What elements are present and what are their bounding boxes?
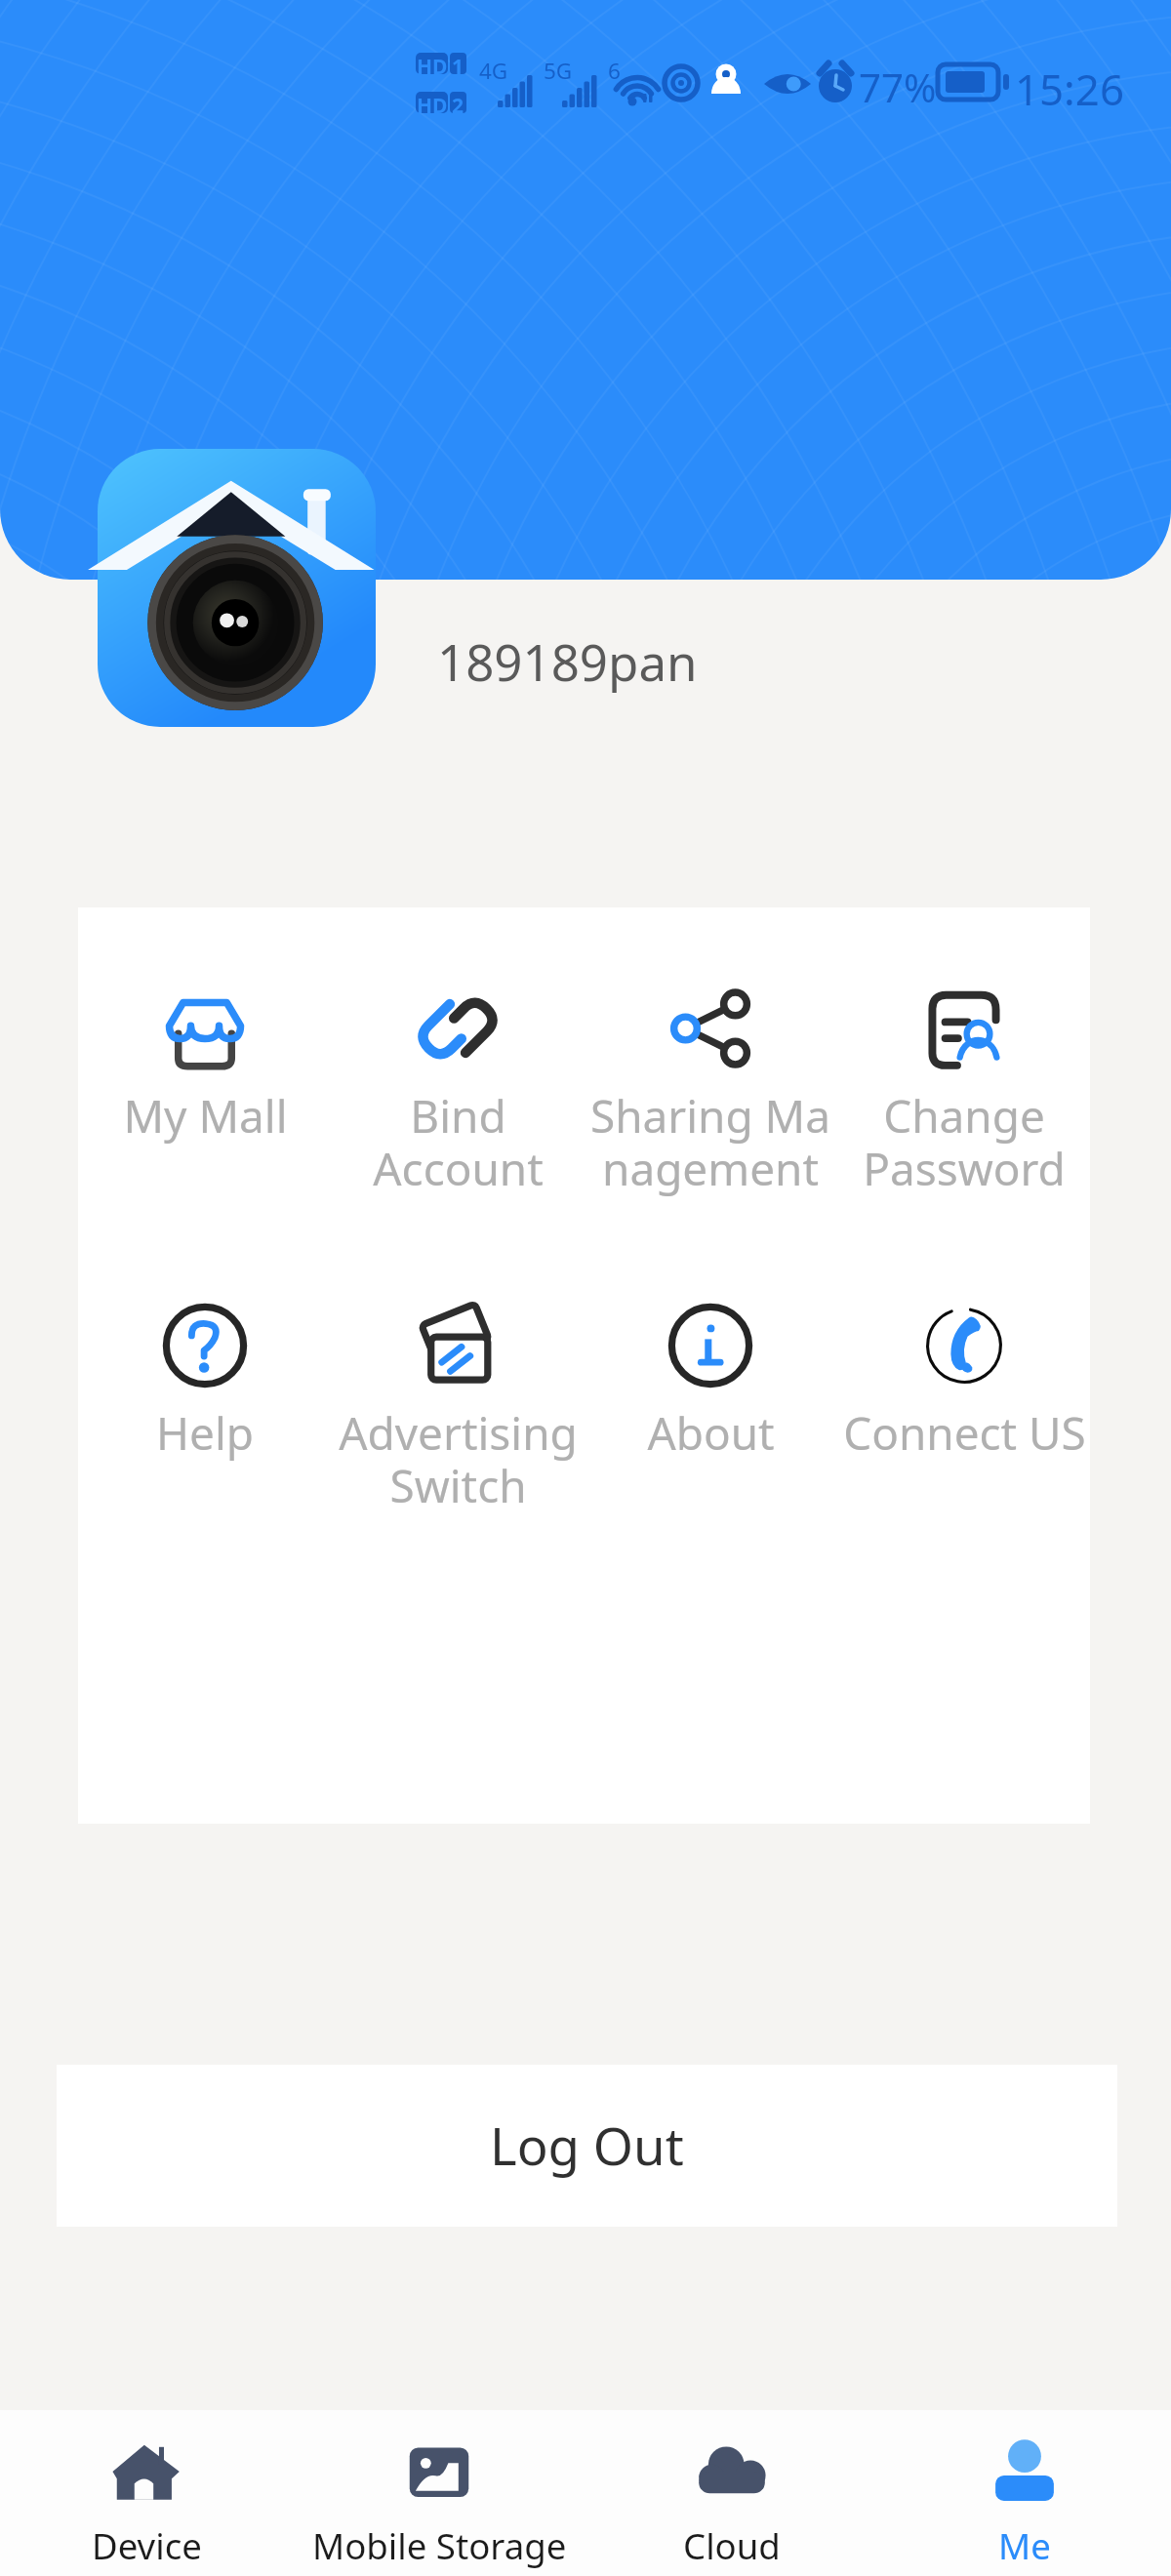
- staticText: Connect US: [843, 1402, 1086, 1464]
- button[interactable]: 189189pan: [437, 617, 788, 704]
- staticText: Cloud: [683, 2521, 781, 2570]
- staticText: My Mall: [123, 1085, 288, 1147]
- button[interactable]: Sharing Ma nagement: [535, 986, 886, 1199]
- staticText: Advertising Switch: [339, 1402, 578, 1516]
- button[interactable]: About: [535, 1303, 886, 1464]
- staticText: 4G: [479, 56, 508, 86]
- staticText: 5G: [544, 56, 573, 86]
- button[interactable]: Help: [29, 1303, 381, 1464]
- button[interactable]: Profile photo: [98, 449, 376, 727]
- button[interactable]: Connect US: [788, 1303, 1140, 1464]
- staticText: Bind Account: [373, 1085, 544, 1199]
- staticText: About: [647, 1402, 775, 1464]
- staticText: 77%: [859, 60, 937, 114]
- staticText: HD: [417, 53, 448, 74]
- staticText: 2: [452, 92, 464, 113]
- button[interactable]: Device: [0, 2436, 293, 2570]
- staticText: Device: [92, 2521, 202, 2570]
- button[interactable]: Cloud: [585, 2436, 878, 2570]
- button[interactable]: Mobile Storage: [293, 2436, 585, 2570]
- button[interactable]: Advertising Switch: [282, 1303, 633, 1516]
- button[interactable]: Bind Account: [282, 986, 633, 1199]
- staticText: Log Out: [490, 2111, 684, 2181]
- staticText: Change Password: [863, 1085, 1066, 1199]
- staticText: Help: [156, 1402, 254, 1464]
- staticText: 189189pan: [437, 627, 698, 695]
- button[interactable]: Change Password: [788, 986, 1140, 1199]
- staticText: 15:26: [1015, 60, 1124, 118]
- staticText: Me: [998, 2521, 1051, 2570]
- staticText: Sharing Ma nagement: [590, 1085, 830, 1199]
- staticText: 1: [452, 53, 464, 74]
- button[interactable]: Me: [878, 2436, 1171, 2570]
- staticText: Mobile Storage: [312, 2521, 567, 2570]
- button[interactable]: My Mall: [29, 986, 381, 1147]
- staticText: 6: [608, 56, 621, 86]
- button[interactable]: Log Out: [57, 2065, 1117, 2227]
- staticText: HD: [417, 92, 448, 113]
